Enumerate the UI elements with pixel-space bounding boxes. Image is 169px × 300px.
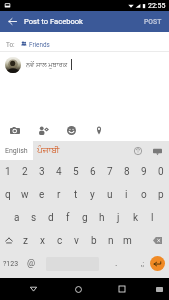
button[interactable]: Check in	[85, 119, 113, 141]
button[interactable]: 6	[84, 160, 101, 183]
staticText: 7	[107, 166, 113, 178]
staticText: 0	[158, 166, 164, 178]
staticText: 1	[5, 166, 11, 178]
staticText: m	[123, 235, 132, 247]
staticText: POST	[144, 18, 162, 26]
staticText: .	[115, 258, 118, 269]
staticText: i	[125, 189, 128, 201]
staticText: 4	[56, 166, 62, 178]
button[interactable]: Enter	[150, 256, 165, 271]
button[interactable]: g	[76, 206, 93, 229]
button[interactable]: 9	[135, 160, 152, 183]
staticText: ,;	[141, 260, 144, 268]
button[interactable]: Change keyboard	[149, 143, 165, 159]
button[interactable]: 3	[33, 160, 50, 183]
button[interactable]: 1	[0, 160, 16, 183]
button[interactable]: e	[33, 183, 50, 206]
button[interactable]: c	[51, 229, 68, 252]
button[interactable]: POST	[137, 11, 169, 32]
staticText: 9	[141, 166, 147, 178]
button[interactable]: Backspace	[146, 229, 169, 252]
staticText: f	[66, 212, 70, 224]
button[interactable]: n	[102, 229, 119, 252]
staticText: x	[40, 235, 45, 247]
button[interactable]: y	[84, 183, 101, 206]
staticText: ਨਵੇਂ ਸਾਲ ਮੁਬਾਰਕ	[26, 61, 68, 69]
staticText: r	[57, 189, 61, 201]
button[interactable]: 8	[118, 160, 135, 183]
button[interactable]: f	[59, 206, 76, 229]
staticText: ?123	[3, 260, 19, 268]
button[interactable]: @	[22, 252, 40, 275]
staticText: English	[5, 147, 28, 155]
button[interactable]: Switch keyboard	[149, 279, 169, 299]
button[interactable]: d	[42, 206, 59, 229]
button[interactable]: k	[127, 206, 144, 229]
staticText: d	[48, 212, 54, 224]
staticText: p	[158, 189, 164, 201]
button[interactable]: Tag people	[29, 119, 57, 141]
button[interactable]: p	[152, 183, 169, 206]
staticText: j	[117, 212, 120, 224]
button[interactable]: q	[0, 183, 16, 206]
button[interactable]: o	[135, 183, 152, 206]
button[interactable]: v	[68, 229, 85, 252]
staticText: Post to Facebook	[24, 17, 83, 26]
button[interactable]: z	[17, 229, 34, 252]
staticText: 22:55	[148, 2, 166, 10]
button[interactable]: 4	[50, 160, 67, 183]
staticText: y	[90, 189, 95, 201]
staticText: h	[99, 212, 105, 224]
staticText: v	[74, 235, 79, 247]
staticText: u	[107, 189, 113, 201]
staticText: q	[5, 189, 11, 201]
staticText: ਪੰਜਾਬੀ	[37, 146, 60, 155]
button[interactable]: x	[34, 229, 51, 252]
staticText: 3	[39, 166, 45, 178]
staticText: a	[14, 212, 20, 224]
button[interactable]: u	[101, 183, 118, 206]
button[interactable]: i	[118, 183, 135, 206]
button[interactable]: t	[67, 183, 84, 206]
staticText: n	[108, 235, 114, 247]
button[interactable]: b	[85, 229, 102, 252]
staticText: t	[74, 189, 78, 201]
button[interactable]: Help	[130, 143, 146, 159]
button[interactable]: Photo	[1, 119, 29, 141]
staticText: To:	[6, 41, 15, 48]
staticText: s	[31, 212, 37, 224]
staticText: b	[91, 235, 97, 247]
button[interactable]: Recents	[111, 278, 133, 300]
button[interactable]: Shift	[0, 229, 17, 252]
button[interactable]: ,;	[134, 252, 150, 275]
button[interactable]: Back	[22, 278, 44, 300]
button[interactable]: 7	[101, 160, 118, 183]
button[interactable]: ?123	[0, 252, 22, 275]
button[interactable]: Feeling	[57, 119, 85, 141]
staticText: w	[21, 189, 29, 201]
button[interactable]: l	[144, 206, 161, 229]
button[interactable]: ਪੰਜਾਬੀ	[33, 141, 63, 160]
staticText: 6	[90, 166, 96, 178]
staticText: 5	[73, 166, 79, 178]
staticText: Friends	[29, 41, 50, 48]
button[interactable]: Back	[0, 11, 24, 32]
button[interactable]: English	[0, 141, 33, 160]
button[interactable]: h	[93, 206, 110, 229]
button[interactable]: 0	[152, 160, 169, 183]
button[interactable]: 5	[67, 160, 84, 183]
button[interactable]: m	[119, 229, 136, 252]
button[interactable]: j	[110, 206, 127, 229]
button[interactable]: s	[25, 206, 42, 229]
button[interactable]: Home	[67, 278, 89, 300]
button[interactable]: a	[8, 206, 25, 229]
button[interactable]: r	[50, 183, 67, 206]
staticText: 2	[22, 166, 28, 178]
button[interactable]: w	[16, 183, 33, 206]
staticText: @	[27, 258, 36, 269]
button[interactable]: 2	[16, 160, 33, 183]
staticText: 8	[124, 166, 130, 178]
staticText: g	[82, 212, 88, 224]
